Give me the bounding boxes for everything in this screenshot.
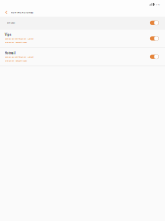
staticText: ACTIVADO xyxy=(7,21,16,24)
button[interactable]: Hotmail xyxy=(0,48,165,66)
button[interactable]: Vips xyxy=(0,30,165,47)
staticText: Vips xyxy=(5,33,11,37)
staticText: Hotmail xyxy=(5,52,16,55)
staticText: Vibración: Desactivado xyxy=(5,59,27,62)
staticText: Sonido de notificación: Latest xyxy=(5,37,34,40)
button[interactable]: Back xyxy=(2,8,11,17)
button[interactable]: ACTIVADO xyxy=(0,17,165,29)
staticText: NOTIFICACIONES xyxy=(11,11,34,14)
staticText: Vibración: Desactivado xyxy=(5,41,27,44)
staticText: 9:40 xyxy=(155,3,159,6)
staticText: Sonido de notificación: Latest xyxy=(5,56,34,58)
